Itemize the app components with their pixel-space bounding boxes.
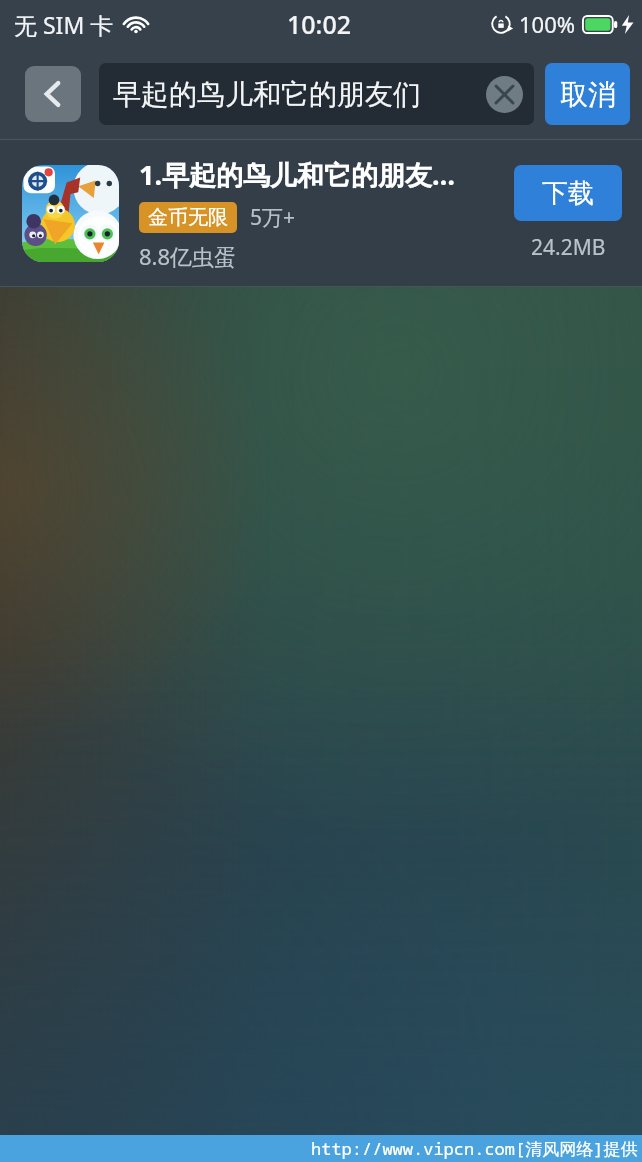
staticText: 1.早起的鸟儿和它的朋友… (139, 156, 456, 193)
button[interactable]: 取消 (545, 63, 630, 125)
staticText: 100% (519, 9, 576, 39)
staticText: 无 SIM 卡 (14, 9, 114, 40)
button[interactable]: 1.早起的鸟儿和它的朋友… (0, 140, 642, 287)
staticText: 24.2MB (531, 233, 606, 262)
button[interactable]: 清除 (484, 74, 524, 114)
button[interactable]: 返回 (25, 66, 81, 122)
staticText: 8.8亿虫蛋 (139, 241, 237, 271)
staticText: 10:02 (287, 7, 352, 41)
staticText: 早起的鸟儿和它的朋友们 (113, 77, 421, 112)
staticText: http://www.vipcn.com[清风网络]提供 (311, 1137, 638, 1160)
staticText: 取消 (560, 77, 616, 112)
staticText: 金币无限 (148, 205, 228, 230)
staticText: 下载 (542, 177, 594, 210)
button[interactable]: 下载 (514, 165, 622, 221)
button[interactable]: 早起的鸟儿和它的朋友们 (99, 63, 534, 125)
staticText: 5万+ (250, 203, 296, 232)
